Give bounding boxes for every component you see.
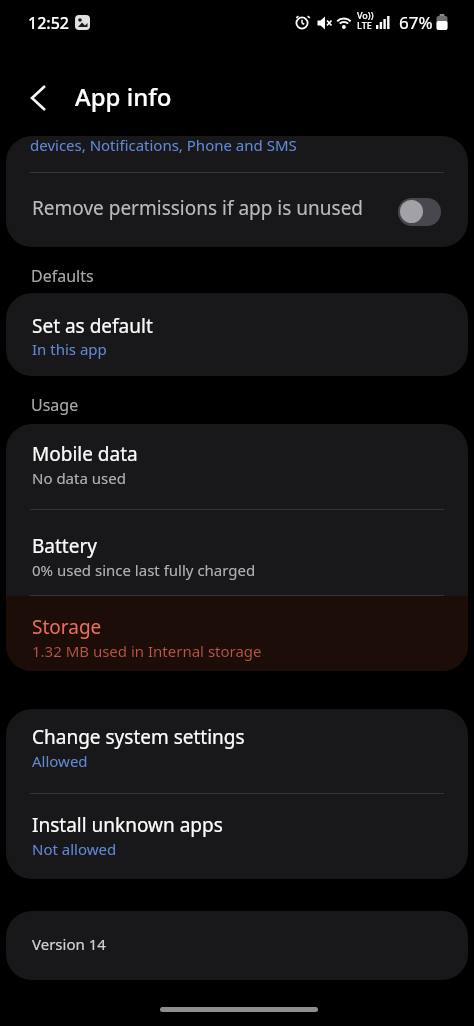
staticText: 67% — [399, 11, 433, 34]
staticText: Battery — [32, 533, 97, 559]
staticText: Mobile data — [32, 441, 138, 467]
button[interactable]: Set as default — [6, 293, 468, 376]
staticText: No data used — [32, 468, 126, 488]
staticText: Storage — [32, 614, 102, 640]
staticText: Version 14 — [32, 934, 106, 954]
staticText: Allowed — [32, 751, 88, 771]
staticText: devices, Notifications, Phone and SMS — [30, 135, 297, 155]
button[interactable]: Battery — [6, 510, 468, 595]
button[interactable]: Change system settings — [6, 709, 468, 793]
staticText: App info — [75, 80, 172, 113]
staticText: LTE — [357, 19, 372, 31]
button[interactable]: Storage — [6, 596, 468, 671]
button[interactable]: Version 14 — [6, 911, 468, 980]
staticText: Remove permissions if app is unused — [32, 195, 364, 221]
button[interactable] — [18, 78, 62, 118]
staticText: Set as default — [32, 313, 153, 339]
staticText: 0% used since last fully charged — [32, 560, 256, 580]
button[interactable]: Install unknown apps — [6, 794, 468, 879]
staticText: 1.32 MB used in Internal storage — [32, 641, 262, 661]
staticText: Change system settings — [32, 724, 245, 750]
staticText: Usage — [31, 394, 79, 416]
staticText: In this app — [32, 339, 107, 359]
button[interactable]: Mobile data — [6, 424, 468, 509]
staticText: Defaults — [31, 265, 94, 287]
staticText: 12:52 — [28, 12, 69, 34]
staticText: Install unknown apps — [32, 812, 223, 838]
staticText: Vo)) — [357, 9, 374, 21]
button[interactable]: Remove permissions if app is unused — [6, 173, 468, 247]
staticText: Not allowed — [32, 839, 117, 859]
